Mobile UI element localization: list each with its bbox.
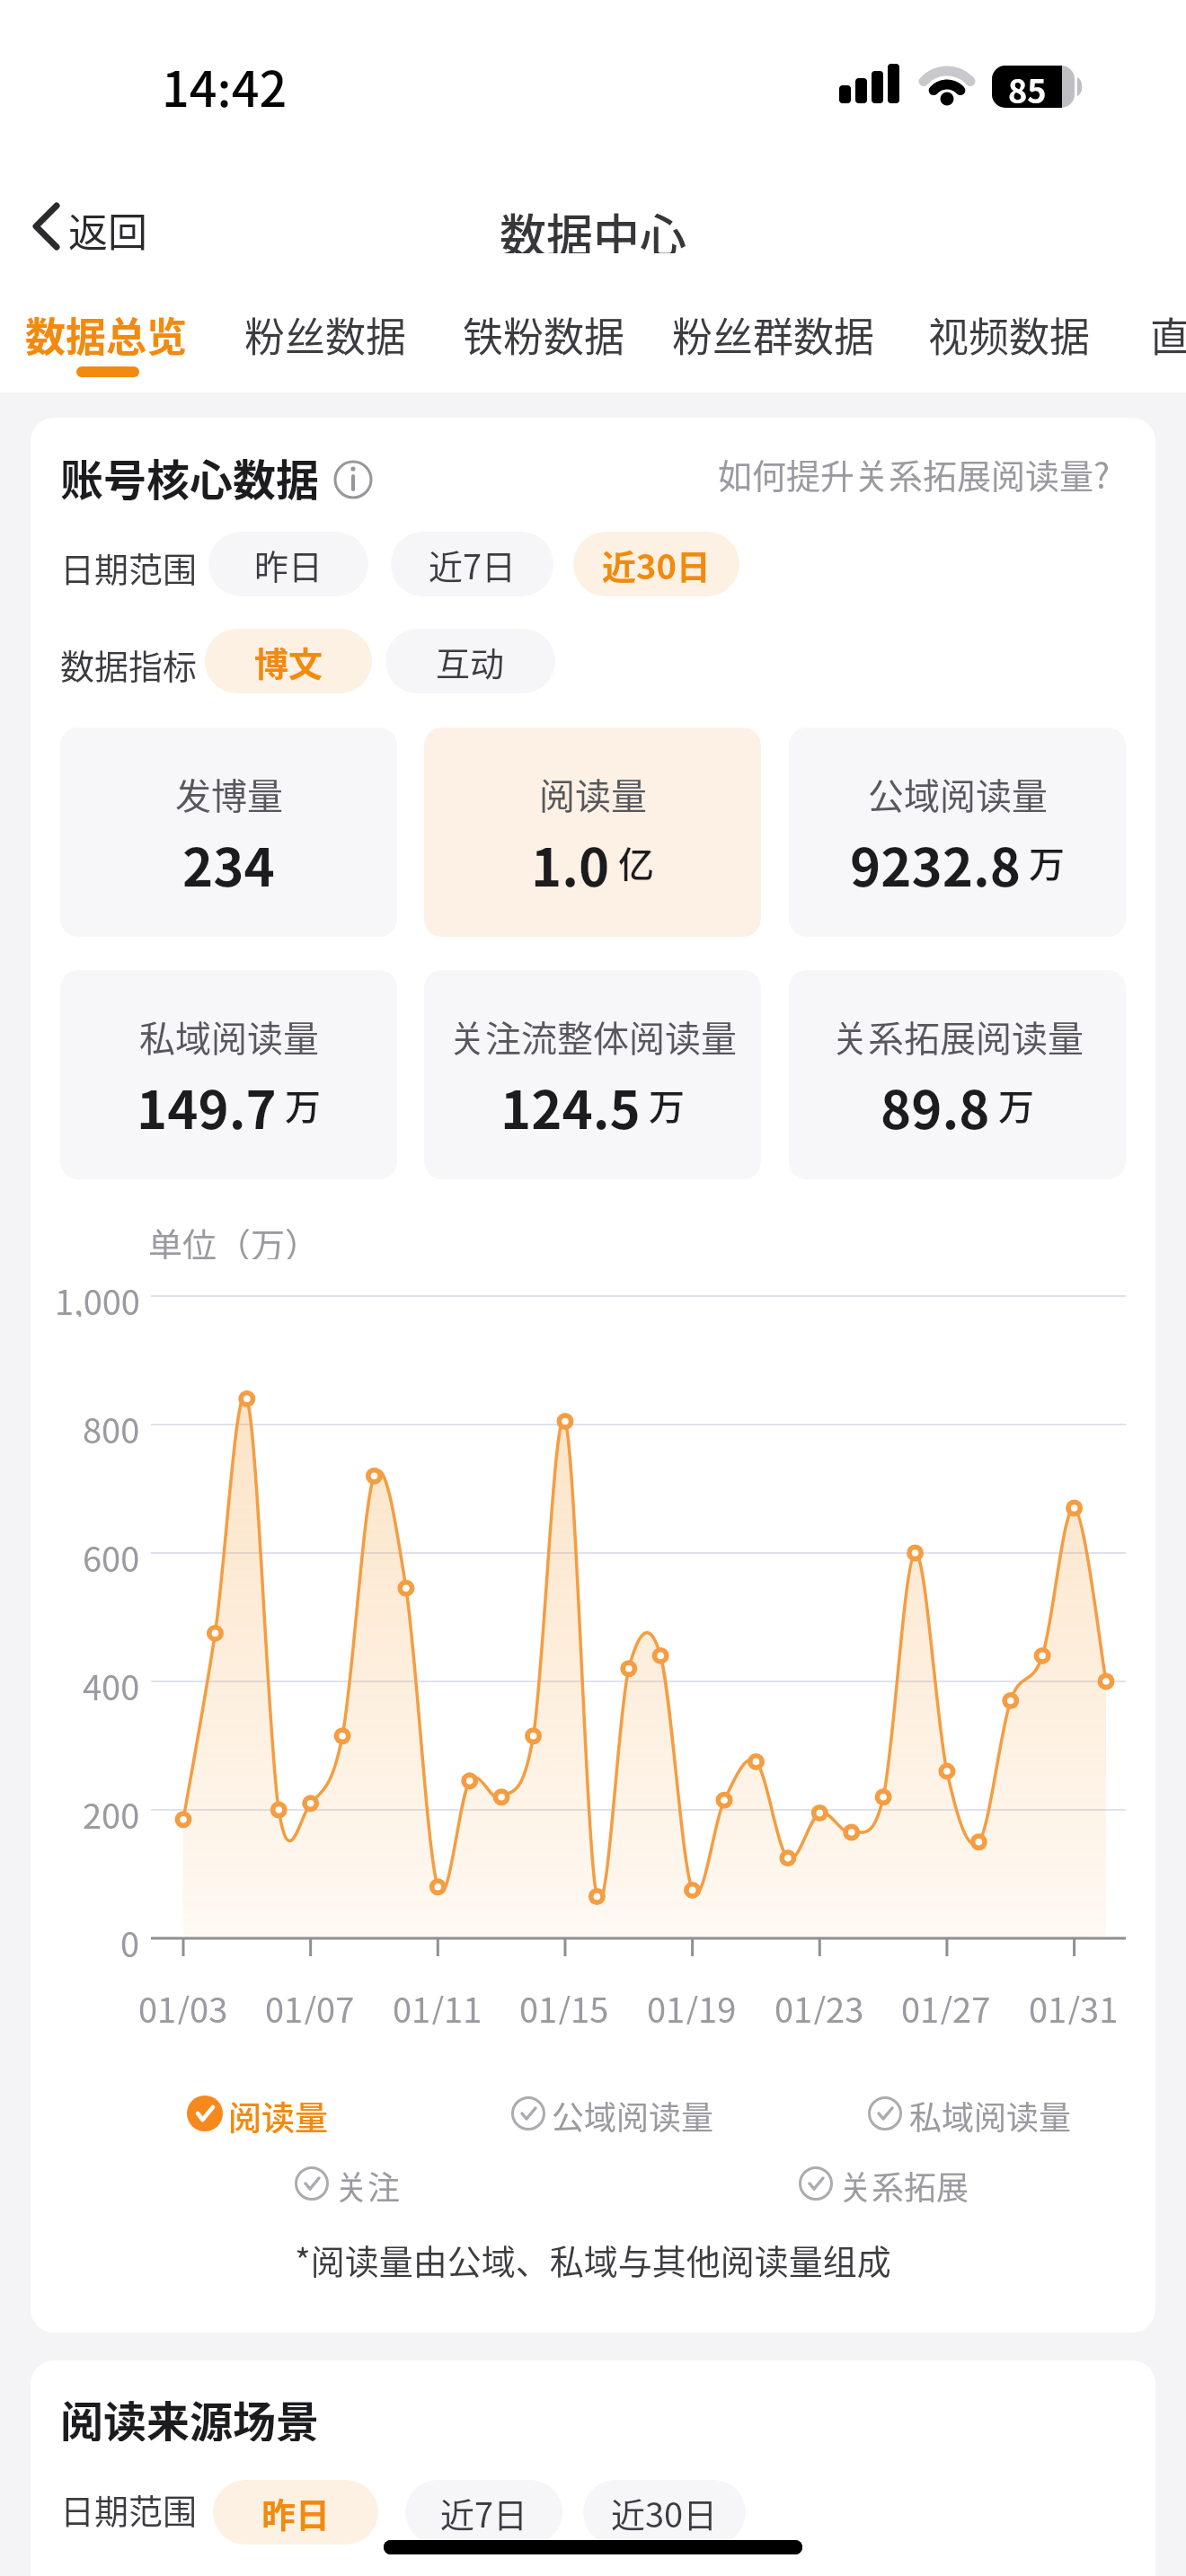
- staticText: 粉丝群数据: [672, 305, 875, 356]
- staticText: 01/15: [519, 1983, 609, 2025]
- staticText: 400: [83, 1661, 140, 1702]
- staticText: 阅读来源场景: [60, 2387, 320, 2441]
- staticText: 昨日: [261, 2488, 331, 2537]
- staticText: 数据总览: [25, 305, 188, 356]
- staticText: 账号核心数据: [60, 446, 320, 501]
- staticText: 万: [1021, 836, 1065, 888]
- staticText: 私域阅读量: [909, 2092, 1072, 2135]
- staticText: 01/11: [393, 1983, 482, 2025]
- staticText: 铁粉数据: [463, 305, 625, 356]
- staticText: 日期范围: [60, 543, 198, 586]
- staticText: 博文: [254, 637, 323, 686]
- staticText: 阅读量: [539, 768, 647, 813]
- staticText: 200: [83, 1789, 140, 1831]
- staticText: 234: [182, 826, 275, 898]
- staticText: 公域阅读量: [552, 2092, 714, 2135]
- staticText: 单位（万）: [148, 1218, 320, 1259]
- staticText: 万: [990, 1079, 1034, 1131]
- staticText: 1.0: [531, 826, 610, 898]
- staticText: 直: [1150, 305, 1186, 356]
- staticText: 关注: [335, 2162, 401, 2205]
- staticText: 关注流整体阅读量: [449, 1010, 737, 1055]
- staticText: 日期范围: [60, 2484, 198, 2527]
- staticText: 返回: [68, 201, 147, 251]
- staticText: 亿: [610, 836, 654, 888]
- staticText: 近30日: [602, 540, 711, 589]
- staticText: 600: [83, 1532, 140, 1574]
- staticText: 粉丝数据: [244, 305, 407, 356]
- staticText: 视频数据: [928, 305, 1091, 356]
- staticText: 1,000: [55, 1275, 140, 1317]
- staticText: 89.8: [881, 1069, 990, 1141]
- staticText: 01/07: [265, 1983, 355, 2025]
- staticText: 01/19: [647, 1983, 737, 2025]
- staticText: 昨日: [254, 540, 323, 589]
- staticText: 01/27: [901, 1983, 991, 2025]
- staticText: 发博量: [175, 768, 283, 813]
- staticText: 0: [120, 1918, 140, 1959]
- staticText: 关系拓展阅读量: [832, 1010, 1084, 1055]
- staticText: 阅读量: [228, 2092, 328, 2135]
- staticText: 近7日: [429, 540, 517, 589]
- staticText: 数据指标: [60, 640, 198, 683]
- staticText: 私域阅读量: [139, 1010, 319, 1055]
- staticText: 关系拓展: [839, 2162, 969, 2205]
- staticText: 数据中心: [500, 199, 687, 253]
- staticText: 互动: [436, 637, 505, 686]
- staticText: 如何提升关系拓展阅读量?: [718, 449, 1111, 496]
- staticText: 149.7: [137, 1069, 277, 1141]
- staticText: 85: [1008, 66, 1047, 108]
- staticText: 124.5: [500, 1069, 641, 1141]
- staticText: 800: [83, 1404, 140, 1445]
- staticText: 01/03: [138, 1983, 228, 2025]
- staticText: 14:42: [162, 50, 288, 110]
- staticText: 近7日: [440, 2488, 528, 2537]
- staticText: 01/31: [1029, 1983, 1119, 2025]
- staticText: 公域阅读量: [868, 768, 1048, 813]
- staticText: *阅读量由公域、私域与其他阅读量组成: [295, 2235, 891, 2280]
- staticText: 9232.8: [850, 826, 1021, 898]
- staticText: 01/23: [774, 1983, 864, 2025]
- staticText: 万: [277, 1079, 321, 1131]
- staticText: 近30日: [611, 2488, 718, 2537]
- staticText: 万: [641, 1079, 685, 1131]
